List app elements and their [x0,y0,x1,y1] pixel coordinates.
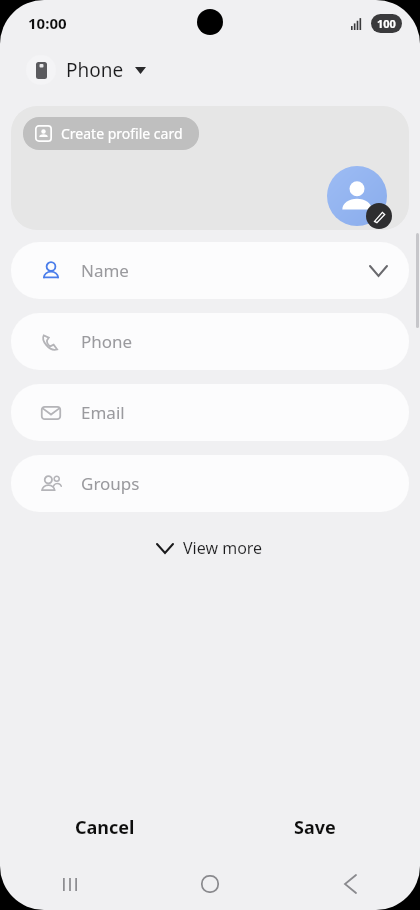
staticText: 10:00 [28,13,67,33]
button[interactable]: Phone [22,51,150,89]
button[interactable]: Edit profile picture [327,166,387,226]
staticText: Create profile card [61,124,183,143]
button[interactable]: Save [210,796,420,858]
button[interactable]: Recents [0,858,140,910]
staticText: 100 [377,16,396,31]
staticText: Name [81,259,129,282]
staticText: Email [81,401,125,424]
staticText: View more [183,537,263,559]
button[interactable]: Name [11,242,409,299]
button[interactable]: Cancel [0,796,210,858]
button[interactable]: Create profile card [23,117,199,150]
staticText: Cancel [75,815,135,840]
staticText: Phone [81,330,133,353]
button[interactable]: Email [11,384,409,441]
staticText: Phone [66,57,124,83]
button[interactable]: View more [143,530,277,566]
button[interactable]: Groups [11,455,409,512]
button[interactable]: Phone [11,313,409,370]
button[interactable]: Back [280,858,420,910]
staticText: Save [294,815,336,840]
button[interactable]: Home [140,858,280,910]
staticText: Groups [81,472,140,495]
